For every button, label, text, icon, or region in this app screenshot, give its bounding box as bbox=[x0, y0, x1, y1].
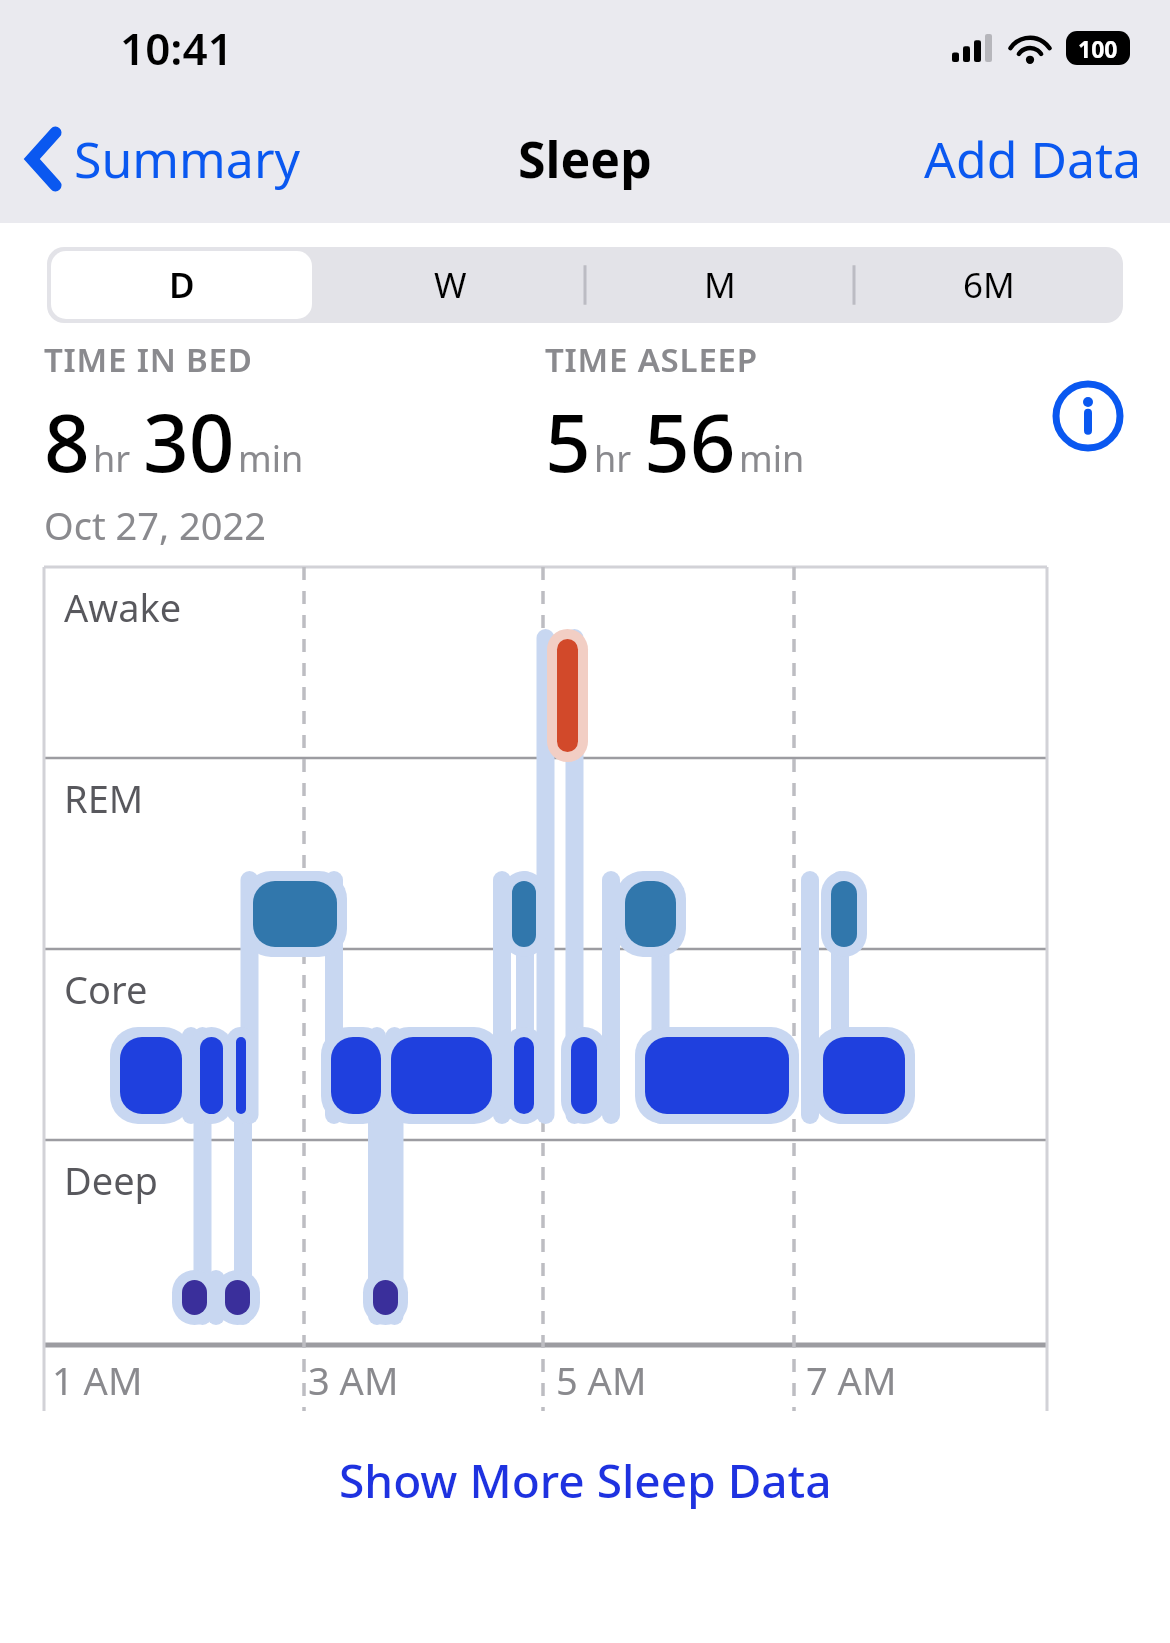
staticText: 56 bbox=[644, 386, 736, 495]
staticText: 10:41 bbox=[120, 18, 233, 78]
staticText: 1 AM bbox=[52, 1354, 143, 1406]
staticText: 100 bbox=[1078, 33, 1118, 64]
staticText: hr bbox=[93, 434, 131, 483]
staticText: min bbox=[739, 434, 805, 483]
staticText: 8 bbox=[44, 386, 90, 495]
staticText: Core bbox=[64, 963, 148, 1015]
button[interactable]: Show More Sleep Data bbox=[0, 1449, 1170, 1512]
staticText: 7 AM bbox=[806, 1354, 897, 1406]
staticText: hr bbox=[594, 434, 632, 483]
button[interactable]: About sleep data bbox=[1046, 374, 1130, 458]
staticText: TIME IN BED bbox=[44, 337, 253, 382]
button[interactable]: M bbox=[589, 251, 850, 319]
button[interactable]: D bbox=[51, 251, 312, 319]
staticText: D bbox=[169, 261, 195, 309]
staticText: Sleep bbox=[518, 125, 652, 193]
staticText: REM bbox=[64, 772, 144, 824]
staticText: 6M bbox=[963, 261, 1015, 309]
staticText: Deep bbox=[64, 1154, 158, 1206]
button[interactable]: Add Data bbox=[910, 113, 1170, 205]
button[interactable]: Summary bbox=[0, 115, 315, 203]
staticText: Awake bbox=[64, 581, 182, 633]
staticText: W bbox=[434, 261, 467, 309]
staticText: 5 bbox=[545, 386, 591, 495]
button[interactable]: W bbox=[320, 251, 581, 319]
staticText: M bbox=[704, 261, 736, 309]
staticText: 5 AM bbox=[556, 1354, 647, 1406]
button[interactable]: 6M bbox=[858, 251, 1119, 319]
staticText: Show More Sleep Data bbox=[339, 1449, 832, 1512]
staticText: 30 bbox=[143, 386, 235, 495]
staticText: Summary bbox=[74, 125, 301, 193]
staticText: Oct 27, 2022 bbox=[44, 499, 266, 551]
staticText: 3 AM bbox=[308, 1354, 399, 1406]
staticText: TIME ASLEEP bbox=[545, 337, 758, 382]
staticText: min bbox=[238, 434, 304, 483]
